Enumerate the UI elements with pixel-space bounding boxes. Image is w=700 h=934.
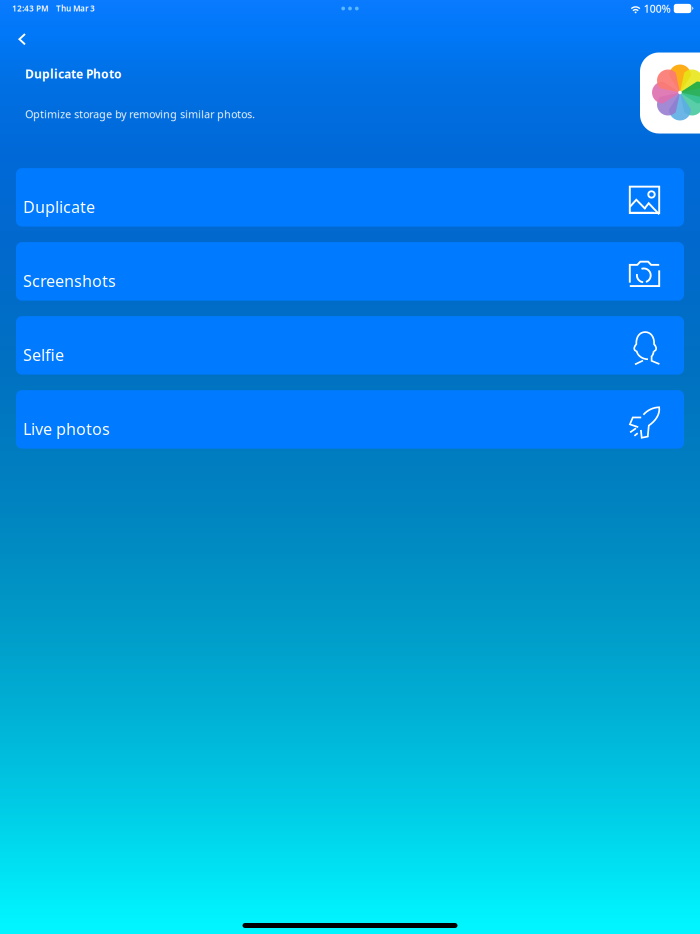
staticText: Selfie bbox=[23, 344, 64, 365]
button[interactable]: Back bbox=[0, 17, 41, 56]
button[interactable]: Live photos bbox=[16, 390, 684, 449]
staticText: 12:43 PM bbox=[12, 3, 48, 14]
button[interactable]: Selfie bbox=[16, 316, 684, 375]
staticText: Screenshots bbox=[23, 270, 116, 291]
staticText: Duplicate bbox=[23, 196, 95, 217]
staticText: Thu Mar 3 bbox=[56, 3, 95, 14]
staticText: Duplicate Photo bbox=[25, 66, 122, 82]
staticText: Live photos bbox=[23, 418, 110, 439]
staticText: 100% bbox=[644, 1, 671, 16]
button[interactable]: Duplicate bbox=[16, 168, 684, 227]
staticText: Optimize storage by removing similar pho… bbox=[25, 107, 255, 121]
button[interactable]: Screenshots bbox=[16, 242, 684, 301]
